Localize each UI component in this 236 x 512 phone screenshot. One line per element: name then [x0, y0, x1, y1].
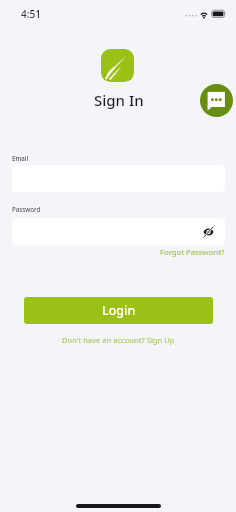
staticText: Email — [12, 154, 29, 162]
button[interactable]: Show password — [198, 222, 218, 242]
staticText: Login — [102, 302, 136, 319]
button[interactable]: Don't have an account? Sign Up — [62, 335, 175, 345]
staticText: Password — [12, 205, 41, 213]
button[interactable]: Forgot Password? — [160, 247, 225, 257]
staticText: 4:51 — [21, 7, 41, 21]
staticText: Sign In — [94, 90, 144, 110]
button[interactable]: Login — [24, 297, 213, 324]
button[interactable]: Password input — [12, 218, 225, 245]
button[interactable]: Chat support — [200, 84, 233, 117]
